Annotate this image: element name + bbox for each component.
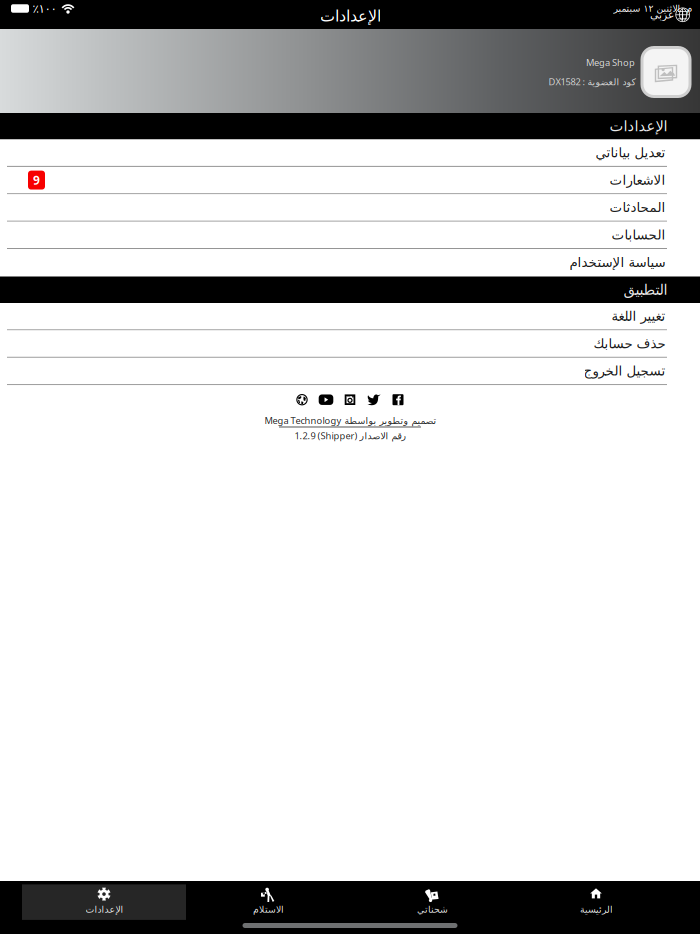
staticText: الاشعارات [609, 172, 665, 188]
staticText: حذف حسابك [593, 336, 665, 351]
button[interactable]: الإعدادات [22, 884, 186, 920]
button[interactable]: الرئيسية [514, 884, 678, 920]
staticText: سياسة الإستخدام [569, 255, 665, 270]
staticText: الإعدادات [85, 904, 123, 915]
staticText: ٪١٠٠ [32, 2, 56, 15]
button[interactable]: المحادثات [0, 194, 700, 222]
button[interactable]: تسجيل الخروج [0, 358, 700, 385]
staticText: تصميم وتطوير بواسطة Mega Technology [264, 414, 436, 427]
button[interactable]: تصميم وتطوير بواسطة Mega Technology [264, 414, 436, 427]
staticText: م الاثنين ١٢ سبتمبر [613, 3, 692, 14]
staticText: الرئيسية [579, 904, 612, 915]
staticText: التطبيق [623, 281, 667, 298]
staticText: شحناتي [416, 904, 447, 915]
staticText: الإعدادات [319, 7, 380, 25]
button[interactable]: سياسة الإستخدام [0, 249, 700, 276]
staticText: كود العضوية : DX1582 [548, 75, 635, 88]
staticText: Mega Shop [586, 56, 635, 68]
staticText: المحادثات [609, 200, 665, 215]
button[interactable]: الحسابات [0, 222, 700, 249]
staticText: 9 [33, 172, 40, 188]
button[interactable]: Change profile photo [642, 47, 690, 96]
button[interactable]: تغيير اللغة [0, 303, 700, 330]
staticText: رقم الاصدار (Shipper) 1.2.9 [294, 429, 406, 442]
button[interactable]: الاستلام [186, 884, 350, 920]
button[interactable]: Facebook [392, 394, 403, 405]
button[interactable]: حذف حسابك [0, 330, 700, 358]
staticText: تعديل بياناتي [595, 145, 665, 160]
staticText: الإعدادات [609, 118, 667, 134]
button[interactable]: تعديل بياناتي [0, 139, 700, 167]
button[interactable]: Change language [649, 7, 690, 23]
staticText: تغيير اللغة [611, 309, 665, 324]
button[interactable]: 9 [0, 167, 700, 194]
button[interactable]: شحناتي [350, 884, 514, 920]
staticText: الاستلام [252, 904, 283, 915]
staticText: تسجيل الخروج [583, 363, 665, 378]
staticText: الحسابات [611, 227, 665, 242]
button[interactable]: Twitter [367, 394, 381, 405]
button[interactable]: Instagram [345, 394, 355, 405]
button[interactable]: Website [296, 394, 308, 405]
button[interactable]: YouTube [319, 394, 333, 405]
staticText: عربي [649, 9, 673, 21]
